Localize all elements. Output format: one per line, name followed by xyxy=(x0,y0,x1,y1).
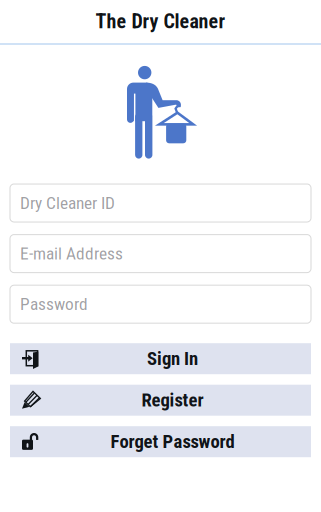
button[interactable]: Register xyxy=(10,385,311,416)
staticText: Sign In xyxy=(147,348,198,370)
staticText: The Dry Cleaner xyxy=(95,10,225,33)
staticText: E-mail Address xyxy=(20,243,123,264)
button[interactable]: Sign In xyxy=(10,343,311,374)
staticText: Password xyxy=(20,294,88,314)
staticText: Forget Password xyxy=(110,431,234,453)
staticText: Dry Cleaner ID xyxy=(20,193,115,213)
staticText: Register xyxy=(141,389,203,411)
button[interactable]: Forget Password xyxy=(10,426,311,457)
